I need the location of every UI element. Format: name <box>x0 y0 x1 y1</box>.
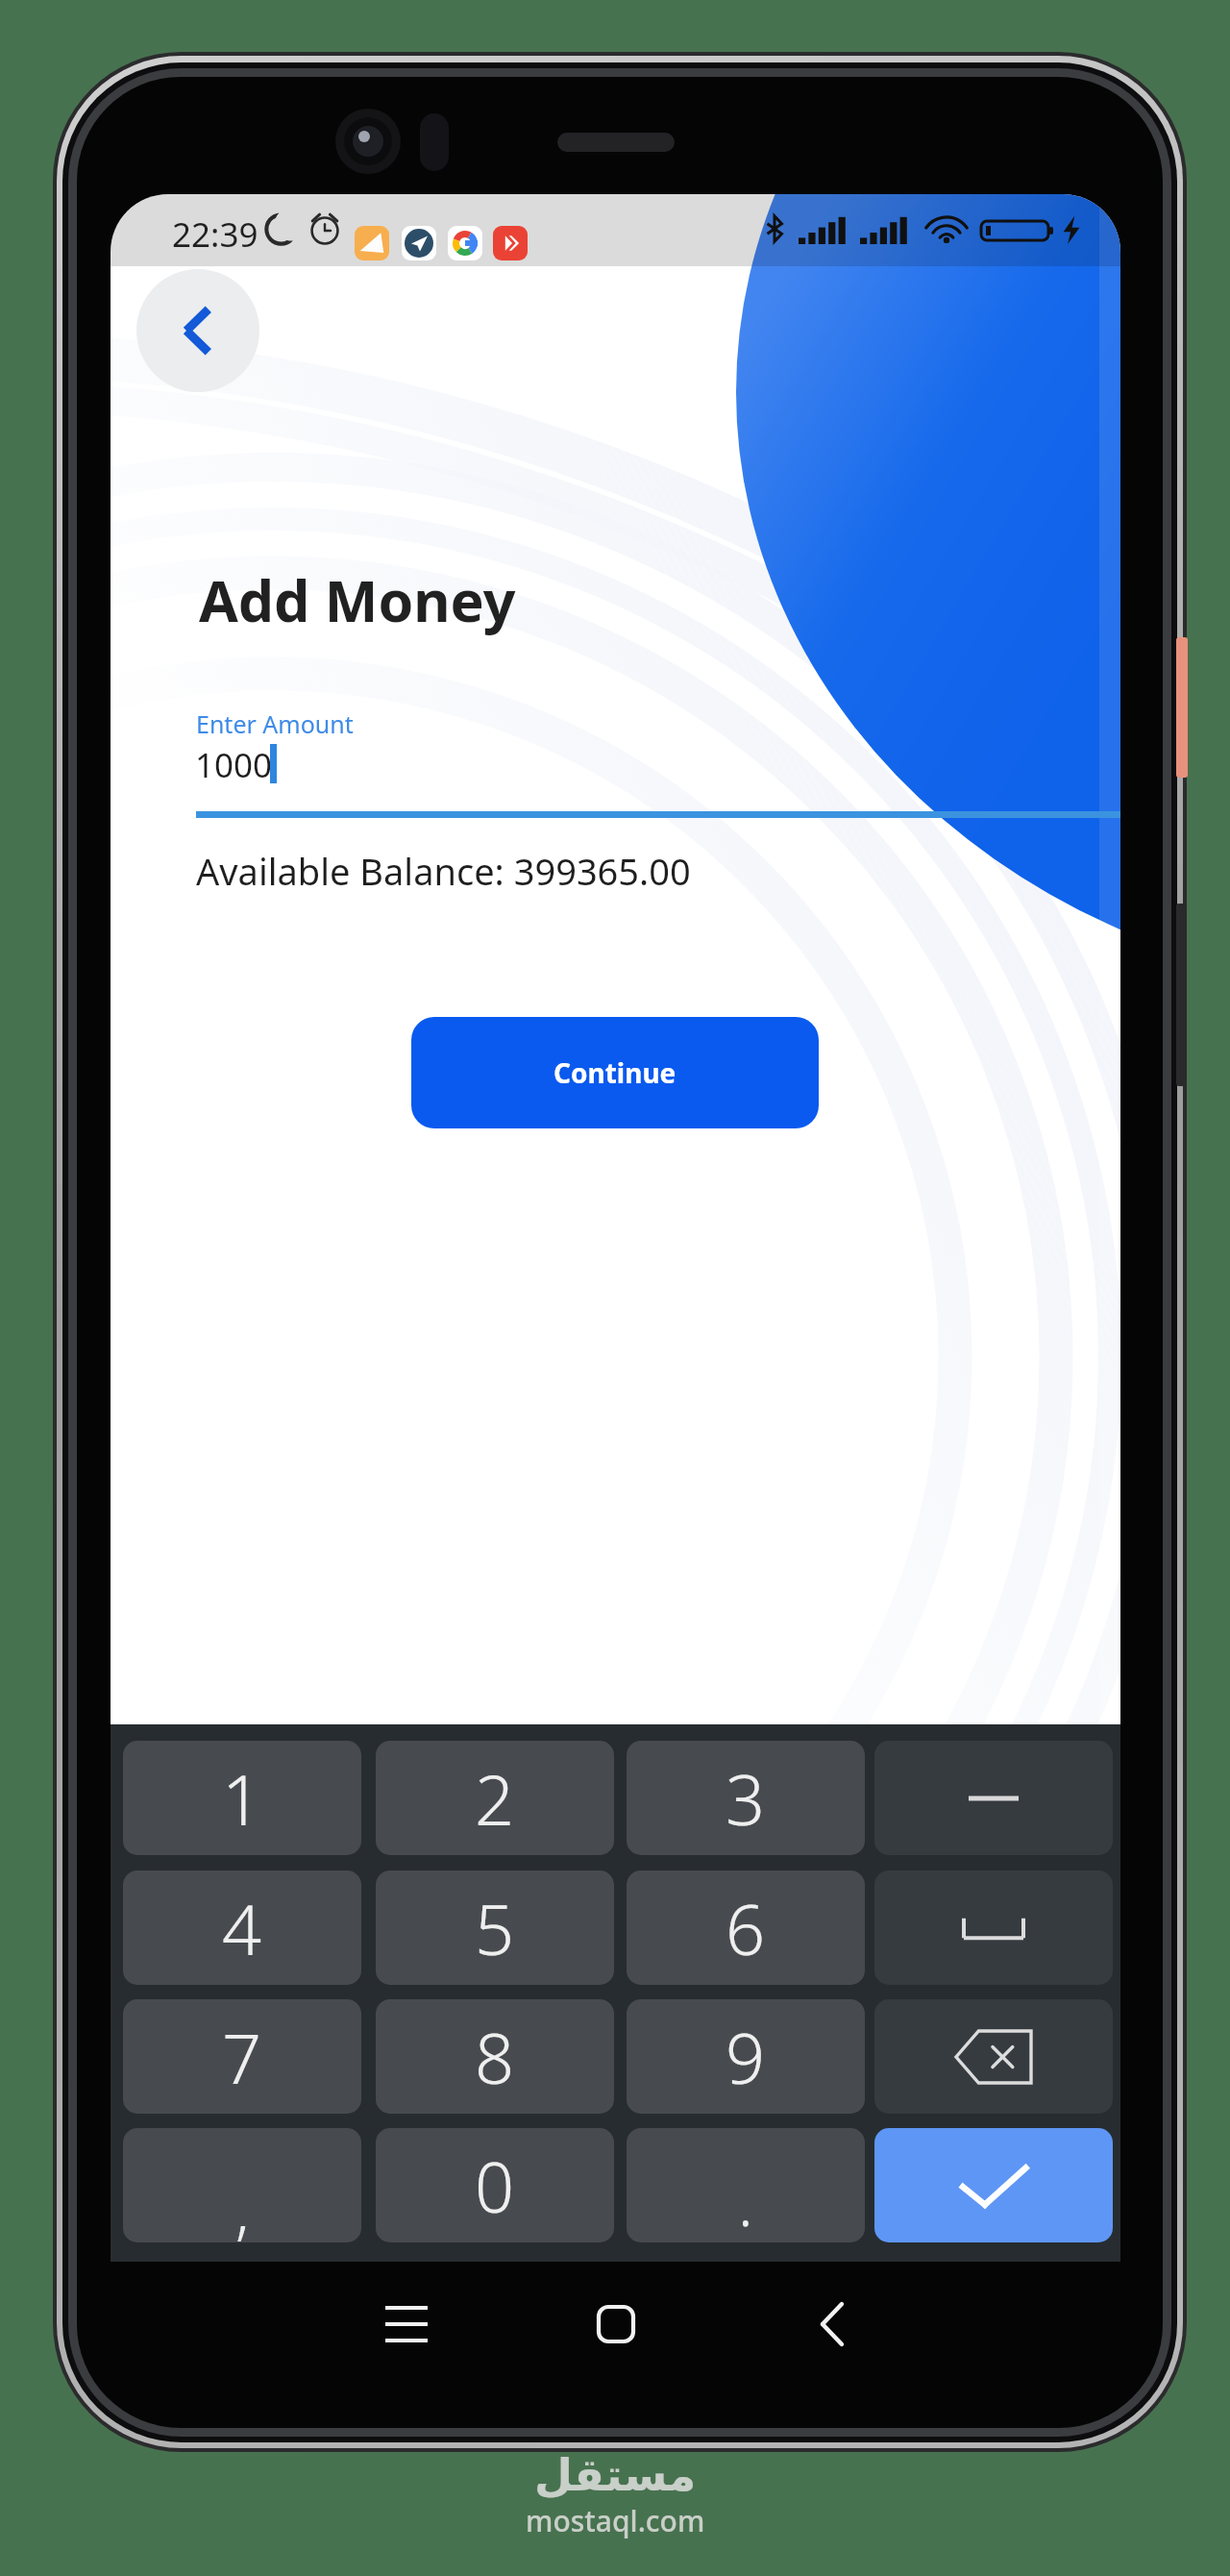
staticText: 1 <box>222 1751 262 1845</box>
staticText: 5 <box>475 1881 515 1975</box>
button[interactable]: 9 <box>627 1999 865 2114</box>
button[interactable]: . <box>627 2128 865 2242</box>
staticText: 9 <box>726 2010 766 2104</box>
staticText: Enter Amount <box>196 707 354 740</box>
button[interactable]: 5 <box>376 1870 614 1985</box>
staticText: 0 <box>475 2139 515 2233</box>
staticText: مستقل <box>534 2449 697 2501</box>
button[interactable]: 7 <box>123 1999 361 2114</box>
staticText: 3 <box>726 1751 766 1845</box>
staticText: Add Money <box>199 561 516 638</box>
button[interactable]: 1 <box>123 1741 361 1855</box>
button[interactable]: Backspace <box>874 1999 1113 2114</box>
button[interactable]: Continue <box>411 1017 819 1128</box>
button[interactable]: 6 <box>627 1870 865 1985</box>
button[interactable]: Back <box>136 269 259 392</box>
button[interactable]: 0 <box>376 2128 614 2242</box>
staticText: 4 <box>222 1881 262 1975</box>
button[interactable]: 8 <box>376 1999 614 2114</box>
staticText: 6 <box>726 1881 766 1975</box>
staticText: 8 <box>475 2010 515 2104</box>
button[interactable]: 3 <box>627 1741 865 1855</box>
staticText: Available Balance: 399365.00 <box>196 846 691 896</box>
staticText: Continue <box>553 1054 676 1091</box>
button[interactable]: 4 <box>123 1870 361 1985</box>
button[interactable]: , <box>123 2128 361 2242</box>
staticText: , <box>235 2168 250 2242</box>
button[interactable]: 2 <box>376 1741 614 1855</box>
staticText: mostaql.com <box>526 2501 705 2540</box>
button[interactable] <box>874 1870 1113 1985</box>
staticText: 2 <box>475 1751 515 1845</box>
staticText: 7 <box>222 2010 262 2104</box>
staticText: 22:39 <box>172 211 258 258</box>
button[interactable] <box>874 1741 1113 1855</box>
staticText: . <box>738 2161 753 2242</box>
staticText: 1000 <box>195 742 273 788</box>
button[interactable]: Enter <box>874 2128 1113 2242</box>
